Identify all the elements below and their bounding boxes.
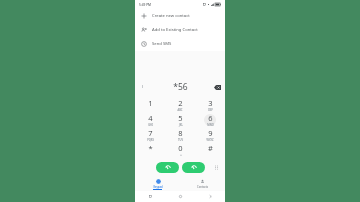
- button[interactable]: Create new contact: [135, 9, 225, 23]
- button[interactable]: Add to existing contact: [135, 23, 225, 37]
- button[interactable]: 7: [135, 127, 165, 142]
- staticText: DEF: [208, 108, 213, 112]
- staticText: 4: [148, 113, 153, 123]
- button[interactable]: 4: [135, 112, 165, 127]
- staticText: 1: [148, 98, 153, 108]
- button[interactable]: 6: [195, 112, 225, 127]
- button[interactable]: Call: [182, 162, 205, 173]
- staticText: 5:49 PM: [139, 3, 152, 7]
- staticText: WXYZ: [206, 138, 214, 142]
- staticText: 9: [208, 128, 213, 138]
- button[interactable]: 0: [165, 142, 195, 157]
- staticText: 8: [178, 128, 183, 138]
- staticText: Keypad: [153, 185, 163, 189]
- staticText: *56: [173, 81, 188, 93]
- button[interactable]: Send SMS: [135, 37, 225, 51]
- staticText: JKL: [179, 123, 183, 127]
- button[interactable]: Contacts: [180, 177, 225, 191]
- staticText: 6: [208, 113, 213, 123]
- button[interactable]: 1: [135, 97, 165, 112]
- button[interactable]: #: [195, 142, 225, 157]
- button[interactable]: Keypad: [135, 177, 180, 191]
- staticText: PQRS: [147, 138, 154, 142]
- button[interactable]: 9: [195, 127, 225, 142]
- button[interactable]: Backspace: [213, 83, 221, 91]
- staticText: +: [180, 153, 182, 157]
- staticText: GHI: [148, 123, 153, 127]
- staticText: Send SMS: [152, 41, 172, 47]
- button[interactable]: 2: [165, 97, 195, 112]
- button[interactable]: Add pause: [140, 84, 145, 89]
- button[interactable]: Back: [195, 191, 225, 202]
- button[interactable]: Home: [165, 191, 195, 202]
- button[interactable]: More options: [212, 163, 220, 171]
- staticText: MNO: [207, 123, 214, 127]
- button[interactable]: 3: [195, 97, 225, 112]
- staticText: ABC: [177, 108, 183, 112]
- staticText: 7: [148, 128, 153, 138]
- staticText: 2: [178, 98, 183, 108]
- staticText: Add to Existing Contact: [152, 27, 198, 33]
- button[interactable]: Call: [156, 162, 179, 173]
- button[interactable]: *: [135, 142, 165, 157]
- button[interactable]: 5: [165, 112, 195, 127]
- staticText: 0: [178, 143, 183, 153]
- staticText: TUV: [178, 138, 183, 142]
- staticText: *: [148, 143, 153, 153]
- button[interactable]: Recents: [135, 191, 165, 202]
- staticText: 3: [208, 98, 213, 108]
- staticText: 5: [178, 113, 183, 123]
- staticText: Create new contact: [152, 13, 190, 19]
- button[interactable]: 8: [165, 127, 195, 142]
- staticText: #: [208, 143, 213, 153]
- staticText: Contacts: [197, 185, 208, 189]
